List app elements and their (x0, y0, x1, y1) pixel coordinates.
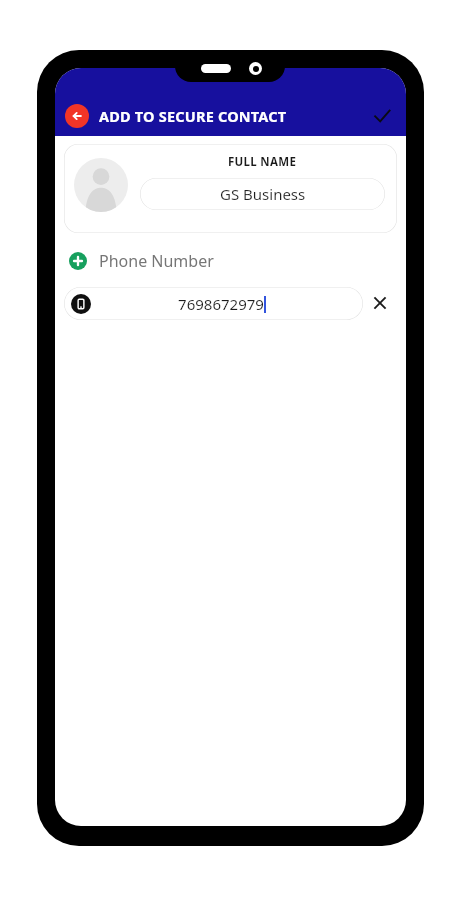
staticText: ADD TO SECURE CONTACT (99, 106, 287, 126)
staticText: 7698672979 (178, 294, 264, 314)
button[interactable]: Phone Number (64, 250, 397, 272)
button[interactable]: Contact photo (74, 158, 128, 212)
button[interactable]: Clear (363, 286, 397, 320)
button[interactable]: 7698672979 (64, 287, 363, 320)
staticText: FULL NAME (228, 154, 297, 170)
button[interactable]: Save (368, 102, 396, 130)
staticText: Phone Number (99, 250, 214, 272)
button[interactable]: Back (65, 104, 89, 128)
button[interactable]: GS Business (140, 178, 385, 210)
staticText: GS Business (220, 184, 306, 204)
